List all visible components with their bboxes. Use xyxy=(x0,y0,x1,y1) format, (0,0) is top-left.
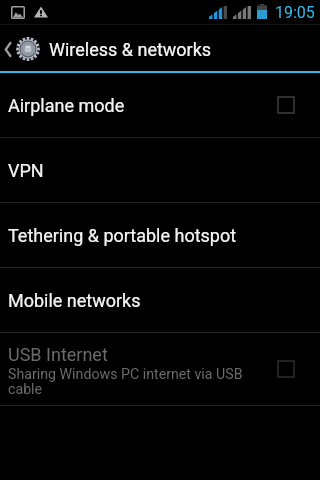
button[interactable]: USB Internet xyxy=(0,333,320,405)
staticText: Tethering & portable hotspot xyxy=(8,225,237,246)
staticText: Sharing Windows PC internet via USB cabl… xyxy=(8,367,248,397)
staticText: 19:05 xyxy=(275,3,315,22)
staticText: Mobile networks xyxy=(8,290,141,311)
button[interactable]: Airplane mode xyxy=(0,73,320,137)
staticText: VPN xyxy=(8,160,44,181)
staticText: Wireless & networks xyxy=(49,39,212,60)
staticText: USB Internet xyxy=(8,344,108,365)
staticText: Airplane mode xyxy=(8,95,125,116)
button[interactable]: Mobile networks xyxy=(0,268,320,332)
button[interactable]: VPN xyxy=(0,138,320,202)
button[interactable]: USB Internet checkbox xyxy=(268,351,304,387)
button[interactable]: Airplane mode checkbox xyxy=(268,87,304,123)
button[interactable]: Tethering & portable hotspot xyxy=(0,203,320,267)
button[interactable]: Navigate up xyxy=(0,25,42,73)
